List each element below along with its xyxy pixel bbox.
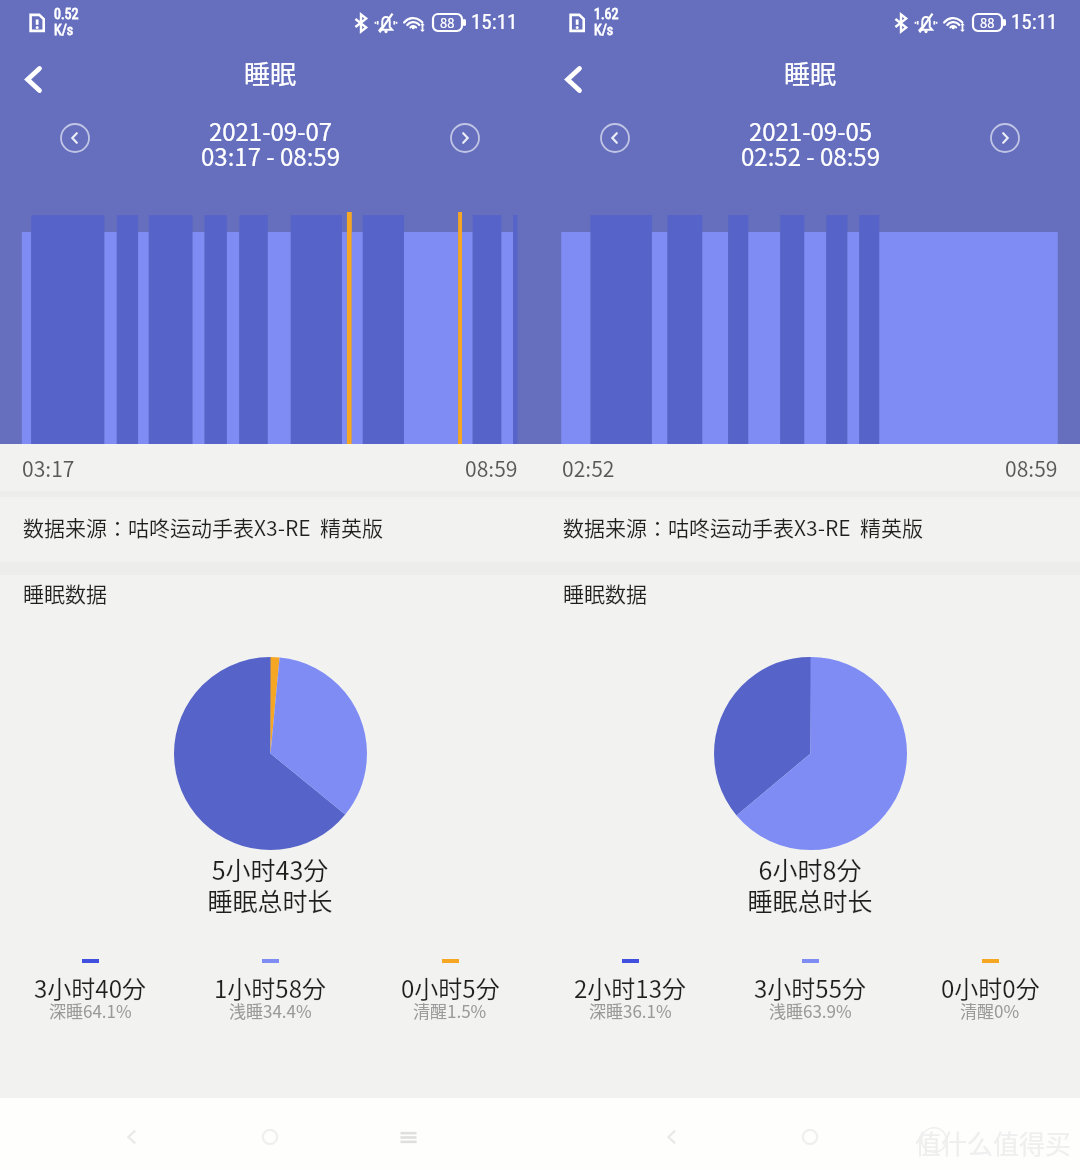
button[interactable]: Recent apps [380,1109,436,1165]
staticText: 5小时43分 睡眠总时长 [0,851,540,918]
button[interactable]: Recent apps [920,1109,976,1165]
staticText: 1小时58分 [214,970,326,1005]
staticText: 浅睡34.4% [229,998,312,1023]
staticText: 08:59 [465,453,518,483]
button[interactable]: Next day [450,123,480,153]
button[interactable]: Back [0,47,64,111]
button[interactable]: Previous day [600,123,630,153]
staticText: 15:11 [471,10,518,35]
staticText: 15:11 [1011,10,1058,35]
staticText: 睡眠数据 [563,578,647,608]
button[interactable]: 0小时0分 [900,954,1080,1030]
staticText: 2小时13分 [574,970,686,1005]
staticText: 深睡64.1% [49,998,132,1023]
staticText: 睡眠 [784,54,837,92]
button[interactable]: Back [540,47,604,111]
staticText: 浅睡63.9% [769,998,852,1023]
staticText: 1.62 [594,6,619,22]
staticText: 03:17 [22,453,75,483]
staticText: 08:59 [1005,453,1058,483]
button[interactable]: 2小时13分 [540,954,720,1030]
staticText: 2021-09-05 02:52 - 08:59 [741,113,880,173]
button[interactable]: 1小时58分 [180,954,360,1030]
staticText: 数据来源：咕咚运动手表X3-RE 精英版 [563,512,924,542]
button[interactable]: 3小时55分 [720,954,900,1030]
staticText: 睡眠数据 [23,578,107,608]
staticText: 深睡36.1% [589,998,672,1023]
staticText: 清醒0% [960,998,1020,1023]
button[interactable]: Previous day [60,123,90,153]
staticText: 6小时8分 睡眠总时长 [540,851,1080,918]
staticText: 2021-09-07 03:17 - 08:59 [201,113,340,173]
staticText: 88 [980,13,995,32]
staticText: K/s [594,22,614,38]
button[interactable]: Next day [990,123,1020,153]
staticText: 3小时40分 [34,970,146,1005]
staticText: 数据来源：咕咚运动手表X3-RE 精英版 [23,512,384,542]
staticText: 88 [440,13,455,32]
staticText: 值什么值得买 [915,1124,1072,1162]
button[interactable]: 3小时40分 [0,954,180,1030]
staticText: K/s [54,22,74,38]
staticText: 睡眠 [244,54,297,92]
staticText: 0小时0分 [941,970,1040,1005]
staticText: 02:52 [562,453,615,483]
staticText: 0小时5分 [401,970,500,1005]
staticText: 清醒1.5% [413,998,487,1023]
button[interactable]: 0小时5分 [360,954,540,1030]
staticText: 0.52 [54,6,79,22]
staticText: 3小时55分 [754,970,866,1005]
